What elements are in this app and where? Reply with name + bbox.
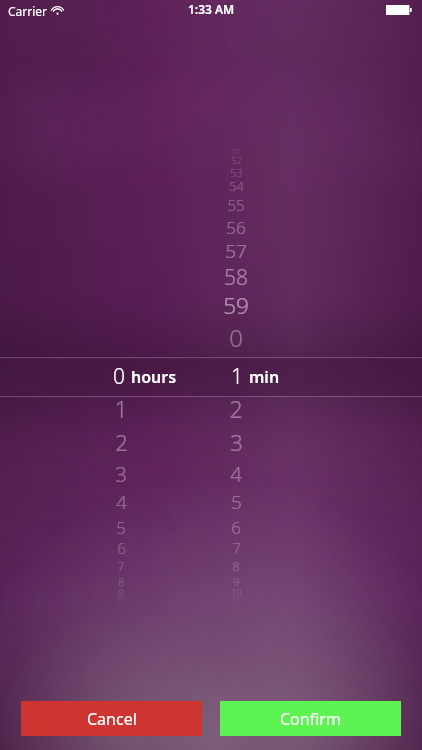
staticText: 7 [232, 538, 241, 558]
staticText: 0 [229, 321, 243, 354]
staticText: 53 [230, 165, 243, 180]
staticText: 55 [227, 195, 245, 215]
button[interactable]: Confirm [220, 701, 401, 736]
staticText: 9 [118, 586, 124, 598]
staticText: 8 [118, 574, 125, 589]
button[interactable]: 0 [0, 357, 422, 396]
staticText: 1:33 AM [188, 1, 235, 17]
staticText: 58 [224, 263, 248, 292]
staticText: 7 [117, 557, 125, 575]
staticText: 10 [117, 595, 125, 605]
staticText: Confirm [280, 708, 341, 730]
staticText: 9 [233, 574, 240, 589]
staticText: 5 [116, 516, 126, 539]
staticText: 54 [229, 177, 244, 195]
other: Wi-Fi signal [51, 4, 64, 15]
staticText: 1 [114, 393, 128, 424]
staticText: Cancel [87, 708, 137, 730]
staticText: 2 [229, 393, 243, 424]
other: Battery full [386, 5, 412, 15]
staticText: Carrier [8, 3, 48, 19]
staticText: 8 [232, 557, 240, 575]
staticText: 6 [231, 516, 241, 539]
staticText: 57 [225, 238, 247, 264]
staticText: 6 [117, 538, 126, 558]
staticText: 11 [232, 595, 240, 605]
staticText: 52 [231, 154, 242, 166]
staticText: 4 [116, 489, 127, 515]
staticText: min [249, 366, 280, 388]
staticText: 59 [223, 290, 249, 321]
staticText: 2 [115, 427, 128, 457]
staticText: hours [131, 366, 177, 388]
staticText: 1 [231, 362, 243, 391]
staticText: 56 [226, 216, 246, 239]
button[interactable]: Cancel [21, 701, 202, 736]
staticText: 10 [231, 586, 242, 598]
staticText: 51 [232, 147, 240, 157]
staticText: 3 [230, 427, 243, 457]
staticText: 3 [115, 460, 127, 488]
staticText: 4 [230, 460, 242, 488]
staticText: 5 [231, 489, 242, 515]
staticText: 0 [113, 362, 125, 391]
